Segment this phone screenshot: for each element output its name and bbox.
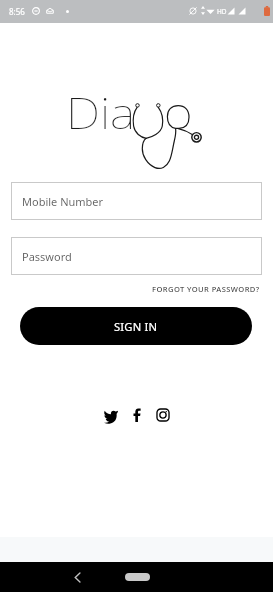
staticText: 8:56 bbox=[9, 6, 25, 17]
staticText: Mobile Number bbox=[22, 194, 104, 209]
staticText: Password bbox=[22, 249, 72, 264]
staticText: SIGN IN bbox=[114, 319, 158, 334]
button[interactable]: SIGN IN bbox=[20, 307, 252, 345]
staticText: FORGOT YOUR PASSWORD? bbox=[152, 284, 260, 294]
button[interactable]: Facebook bbox=[126, 404, 148, 426]
button[interactable]: FORGOT YOUR PASSWORD? bbox=[150, 282, 262, 296]
button[interactable]: Instagram bbox=[152, 404, 174, 426]
button[interactable]: Twitter bbox=[100, 404, 122, 426]
staticText: HD bbox=[217, 7, 227, 16]
button[interactable]: Back bbox=[66, 562, 88, 592]
button[interactable]: Mobile Number bbox=[11, 182, 262, 220]
button[interactable]: Password bbox=[11, 237, 262, 275]
button[interactable]: Home bbox=[124, 562, 150, 592]
staticText: Dia bbox=[66, 85, 136, 142]
